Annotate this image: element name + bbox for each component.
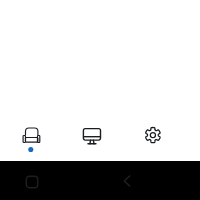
- button[interactable]: Furniture: [11, 120, 52, 156]
- button[interactable]: Back: [116, 170, 138, 192]
- button[interactable]: Home: [21, 171, 43, 193]
- button[interactable]: Settings: [133, 120, 174, 156]
- button[interactable]: Display: [72, 120, 113, 156]
